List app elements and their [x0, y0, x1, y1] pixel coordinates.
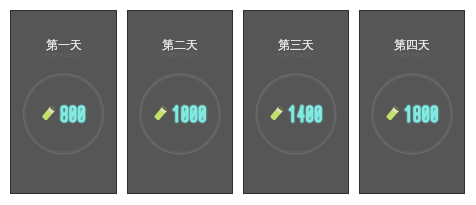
button[interactable]: 第三天 [244, 11, 348, 193]
staticText: 第四天 [394, 37, 430, 52]
button[interactable]: 第二天 [128, 11, 232, 193]
staticText: 第一天 [46, 37, 82, 52]
staticText: 第二天 [162, 37, 198, 52]
button[interactable]: 第四天 [360, 11, 464, 193]
staticText: 第三天 [278, 37, 314, 52]
button[interactable]: 第一天 [11, 11, 116, 193]
staticText: POWER ENERGY [45, 52, 83, 58]
staticText: POWER ENERGY [277, 52, 315, 58]
staticText: POWER ENERGY [161, 52, 199, 58]
staticText: POWER ENERGY [393, 52, 431, 58]
